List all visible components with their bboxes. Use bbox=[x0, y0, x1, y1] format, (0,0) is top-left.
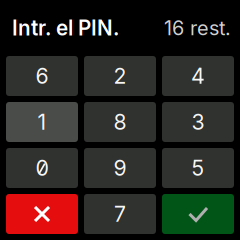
button[interactable]: 6 bbox=[6, 56, 78, 96]
staticText: 8 bbox=[113, 109, 126, 135]
staticText: Intr. el PIN. bbox=[12, 15, 119, 40]
staticText: 3 bbox=[191, 109, 204, 135]
staticText: 6 bbox=[35, 63, 48, 89]
button[interactable]: 9 bbox=[84, 148, 156, 188]
button[interactable]: 3 bbox=[162, 102, 234, 142]
button[interactable]: 5 bbox=[162, 148, 234, 188]
staticText: 7 bbox=[114, 201, 126, 227]
button[interactable]: Confirm bbox=[162, 194, 234, 234]
staticText: 5 bbox=[191, 155, 204, 181]
staticText: 16 rest. bbox=[164, 16, 231, 40]
staticText: 1 bbox=[37, 109, 46, 135]
staticText: 0 bbox=[35, 155, 48, 181]
button[interactable]: 0 bbox=[6, 148, 78, 188]
staticText: 2 bbox=[113, 63, 126, 89]
button[interactable]: 2 bbox=[84, 56, 156, 96]
button[interactable]: Cancel bbox=[6, 194, 78, 234]
button[interactable]: 8 bbox=[84, 102, 156, 142]
staticText: 9 bbox=[113, 155, 126, 181]
button[interactable]: 7 bbox=[84, 194, 156, 234]
button[interactable]: 4 bbox=[162, 56, 234, 96]
staticText: 4 bbox=[191, 63, 205, 89]
button[interactable]: 1 bbox=[6, 102, 78, 142]
